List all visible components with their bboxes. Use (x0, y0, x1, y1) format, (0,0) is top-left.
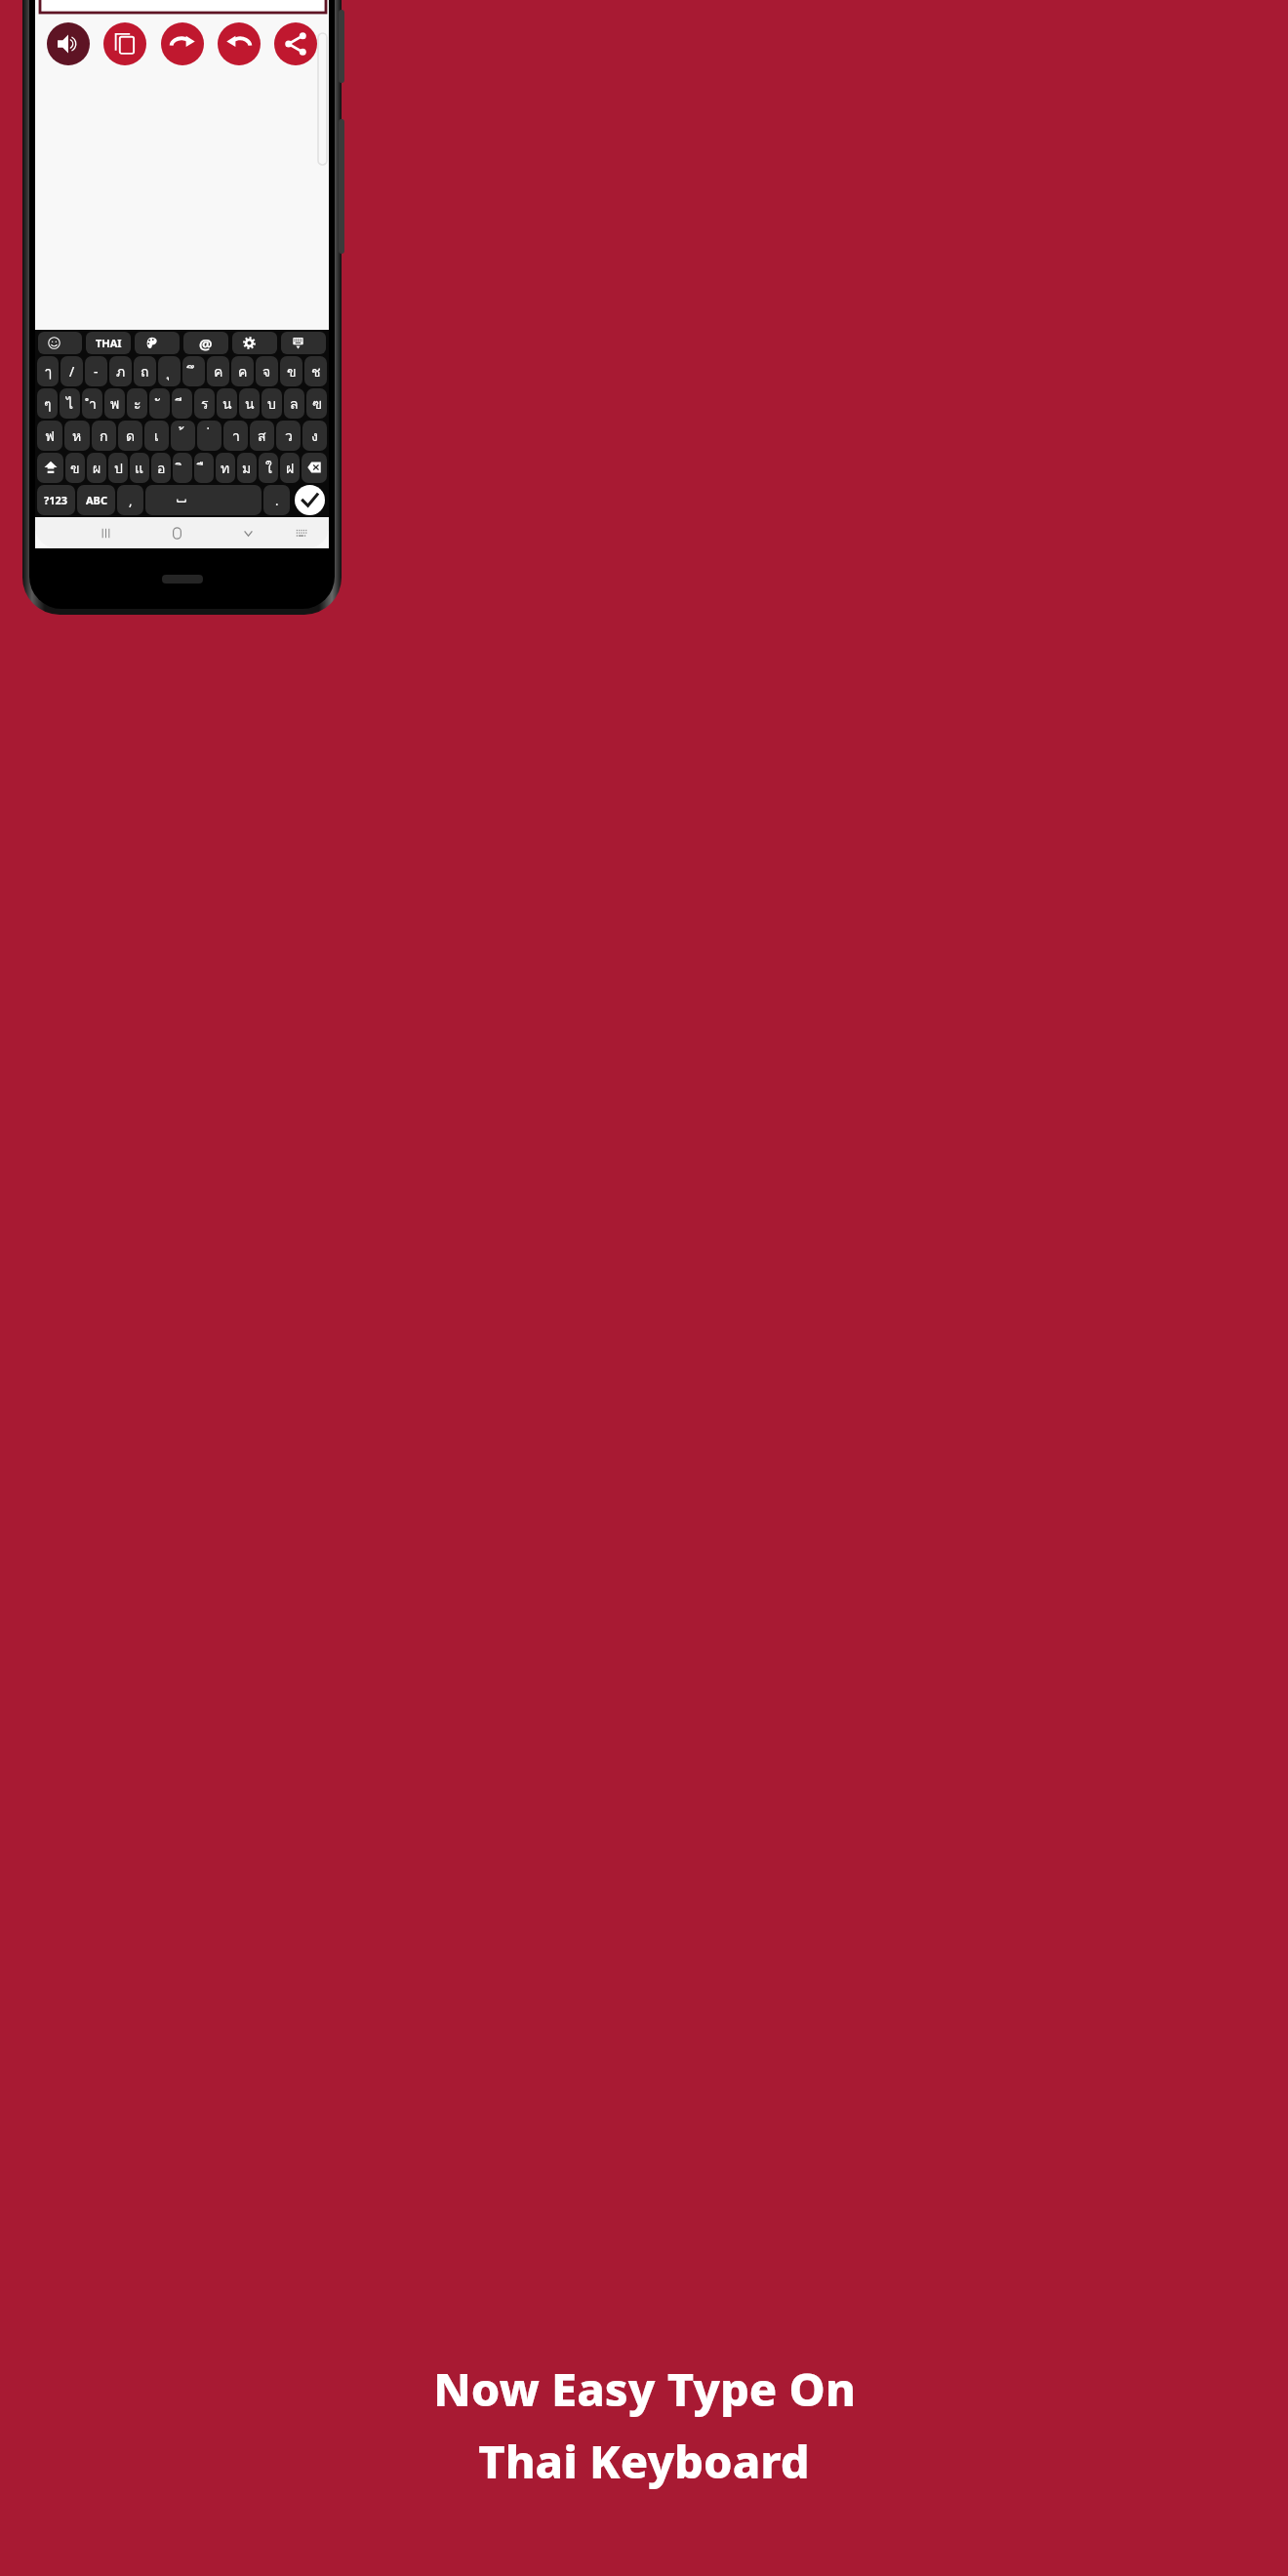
button[interactable]: Theme (135, 332, 180, 354)
button[interactable]: Share (274, 22, 317, 65)
button[interactable]: Switch keyboard (284, 517, 317, 548)
button[interactable]: Redo (161, 22, 204, 65)
button[interactable]: ำ (82, 388, 102, 419)
button[interactable]: น (239, 388, 260, 419)
button[interactable]: แ (130, 453, 149, 483)
button[interactable]: ุ (158, 356, 181, 386)
staticText: ภ (116, 361, 126, 382)
staticText: เ (154, 425, 159, 447)
button[interactable]: ว (276, 421, 301, 451)
button[interactable]: Enter (295, 485, 325, 515)
button[interactable]: . (263, 485, 290, 515)
button[interactable]: ด (118, 421, 142, 451)
button[interactable]: Shift (37, 453, 63, 483)
staticText: @ (199, 334, 213, 353)
staticText: ข (70, 458, 80, 479)
button[interactable]: ี (172, 388, 192, 419)
staticText: ถ (141, 361, 149, 382)
button[interactable]: ห (64, 421, 90, 451)
button[interactable]: Back (213, 517, 284, 548)
button[interactable]: ฃ (306, 388, 327, 419)
staticText: ม (242, 458, 252, 479)
button[interactable]: ส (250, 421, 274, 451)
button[interactable]: Recents (70, 517, 141, 548)
staticText: น (222, 393, 232, 415)
button[interactable]: ข (65, 453, 85, 483)
button[interactable]: Backspace (302, 453, 327, 483)
button[interactable]: ป (108, 453, 128, 483)
button[interactable]: า (223, 421, 248, 451)
staticText: ๅ (45, 361, 52, 382)
button[interactable]: Space (145, 485, 262, 515)
button[interactable]: ไ (60, 388, 80, 419)
staticText: Thai Keyboard (478, 2430, 810, 2492)
button[interactable]: ๆ (37, 388, 58, 419)
staticText: บ (267, 393, 276, 415)
staticText: ป (114, 458, 123, 479)
staticText: ด (126, 425, 136, 447)
button[interactable]: , (117, 485, 143, 515)
button[interactable]: ั (149, 388, 170, 419)
button[interactable]: ๅ (37, 356, 59, 386)
button[interactable]: @ (183, 332, 228, 354)
button[interactable]: ภ (109, 356, 132, 386)
button[interactable]: ่ (197, 421, 221, 451)
staticText: อ (157, 458, 166, 479)
button[interactable]: ม (237, 453, 257, 483)
staticText: / (69, 362, 75, 381)
button[interactable]: / (60, 356, 83, 386)
staticText: ABC (86, 493, 107, 507)
button[interactable]: ึ (182, 356, 205, 386)
button[interactable]: Emoji (38, 332, 82, 354)
button[interactable]: Settings (232, 332, 277, 354)
staticText: ร (201, 393, 209, 415)
button[interactable]: ฟ (37, 421, 62, 451)
button[interactable]: Speak (47, 22, 90, 65)
staticText: ล (290, 393, 299, 415)
button[interactable]: ะ (127, 388, 147, 419)
button[interactable]: บ (262, 388, 282, 419)
staticText: ค (214, 361, 223, 382)
button[interactable]: - (85, 356, 107, 386)
staticText: ไ (66, 393, 74, 415)
button[interactable]: ร (194, 388, 215, 419)
staticText: ใ (265, 458, 272, 479)
staticText: ๆ (44, 393, 52, 415)
staticText: , (129, 492, 133, 509)
button[interactable]: ้ (171, 421, 195, 451)
button[interactable]: พ (104, 388, 125, 419)
staticText: THAI (96, 336, 122, 350)
staticText: แ (135, 458, 144, 479)
button[interactable]: ง (302, 421, 327, 451)
button[interactable]: ถ (134, 356, 156, 386)
button[interactable]: ?123 (37, 485, 75, 515)
button[interactable]: น (217, 388, 237, 419)
button[interactable]: ิ (173, 453, 192, 483)
button[interactable]: ก (92, 421, 116, 451)
button[interactable]: ใ (259, 453, 278, 483)
staticText: Now Easy Type On (433, 2357, 856, 2420)
staticText: ช (311, 361, 321, 382)
button[interactable]: ABC (77, 485, 115, 515)
button[interactable]: Hide keyboard (281, 332, 326, 354)
button[interactable]: ช (304, 356, 327, 386)
button[interactable]: ล (284, 388, 304, 419)
button[interactable]: Copy (103, 22, 146, 65)
button[interactable]: ค (231, 356, 254, 386)
staticText: ฃ (312, 393, 322, 415)
button[interactable]: ข (280, 356, 302, 386)
button[interactable]: ผ (87, 453, 106, 483)
button[interactable]: Undo (218, 22, 261, 65)
button[interactable]: อ (151, 453, 171, 483)
staticText: ฝ (286, 458, 295, 479)
button[interactable]: Home (141, 517, 213, 548)
button[interactable]: THAI (86, 332, 131, 354)
button[interactable]: จ (256, 356, 278, 386)
button[interactable]: ื (194, 453, 214, 483)
button[interactable]: เ (144, 421, 169, 451)
button[interactable]: ค (207, 356, 229, 386)
staticText: ผ (93, 458, 101, 479)
button[interactable]: ฝ (280, 453, 300, 483)
staticText: ะ (134, 393, 141, 415)
button[interactable]: ท (216, 453, 235, 483)
